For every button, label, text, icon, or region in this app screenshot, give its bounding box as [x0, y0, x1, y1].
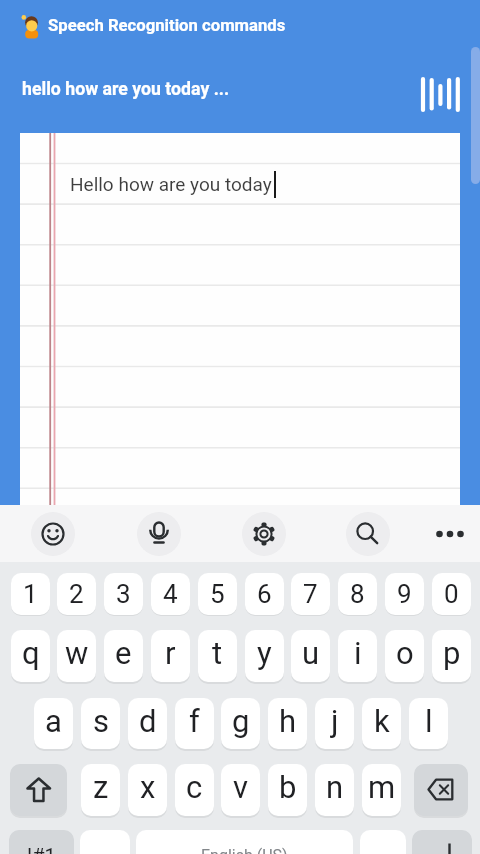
staticText: Speech Recognition commands — [48, 16, 286, 36]
staticText: x — [140, 769, 156, 805]
button[interactable]: d — [128, 698, 167, 749]
staticText: l — [425, 703, 433, 739]
button[interactable]: 2 — [57, 573, 96, 615]
staticText: 3 — [116, 579, 131, 609]
button[interactable]: g — [221, 698, 260, 749]
button[interactable] — [346, 512, 390, 556]
button[interactable]: m — [362, 764, 401, 816]
button[interactable]: j — [315, 698, 354, 749]
staticText: p — [443, 635, 461, 671]
staticText: s — [93, 703, 109, 739]
button[interactable]: r — [151, 630, 190, 682]
button[interactable]: k — [362, 698, 401, 749]
button[interactable]: 1 — [11, 573, 50, 615]
staticText: w — [65, 635, 89, 671]
staticText: y — [257, 635, 272, 671]
button[interactable] — [414, 764, 468, 816]
button[interactable]: u — [291, 630, 330, 682]
staticText: q — [22, 635, 40, 671]
button[interactable] — [428, 512, 472, 556]
button[interactable]: 4 — [151, 573, 190, 615]
button[interactable]: l — [409, 698, 448, 749]
staticText: !#1 — [27, 844, 56, 854]
staticText: i — [354, 635, 362, 671]
staticText: e — [115, 635, 132, 671]
staticText: 0 — [444, 579, 459, 609]
button[interactable]: a — [34, 698, 73, 749]
staticText: 4 — [163, 579, 178, 609]
staticText: 1 — [23, 579, 38, 609]
button[interactable]: z — [81, 764, 120, 816]
button[interactable]: b — [268, 764, 307, 816]
button[interactable]: !#1 — [9, 830, 74, 854]
button[interactable] — [137, 512, 181, 556]
staticText: hello how are you today ... — [22, 79, 230, 100]
staticText: 8 — [350, 579, 365, 609]
button[interactable]: x — [128, 764, 167, 816]
button[interactable]: 9 — [385, 573, 424, 615]
button[interactable] — [10, 764, 67, 816]
staticText: k — [374, 703, 390, 739]
button[interactable]: 6 — [245, 573, 284, 615]
button[interactable]: w — [57, 630, 96, 682]
staticText: z — [93, 769, 109, 805]
staticText: a — [45, 703, 62, 739]
button[interactable]: 8 — [338, 573, 377, 615]
button[interactable] — [360, 830, 406, 854]
staticText: Hello how are you today — [70, 173, 272, 195]
button[interactable]: 7 — [291, 573, 330, 615]
staticText: r — [165, 635, 176, 671]
button[interactable]: h — [268, 698, 307, 749]
button[interactable]: t — [198, 630, 237, 682]
button[interactable]: 5 — [198, 573, 237, 615]
button[interactable]: 0 — [432, 573, 471, 615]
staticText: 6 — [257, 579, 272, 609]
button[interactable]: o — [385, 630, 424, 682]
staticText: 5 — [210, 579, 225, 609]
staticText: b — [279, 769, 297, 805]
button[interactable] — [416, 72, 464, 116]
staticText: 2 — [69, 579, 84, 609]
staticText: u — [302, 635, 320, 671]
button[interactable]: v — [221, 764, 260, 816]
staticText: c — [186, 769, 203, 805]
button[interactable]: y — [245, 630, 284, 682]
button[interactable]: s — [81, 698, 120, 749]
button[interactable]: e — [104, 630, 143, 682]
staticText: g — [232, 703, 250, 739]
button[interactable]: 3 — [104, 573, 143, 615]
button[interactable]: f — [175, 698, 214, 749]
button[interactable]: Hello how are you today — [20, 133, 460, 505]
button[interactable]: p — [432, 630, 471, 682]
staticText: d — [139, 703, 157, 739]
staticText: m — [368, 769, 396, 805]
staticText: 9 — [397, 579, 412, 609]
button[interactable]: c — [175, 764, 214, 816]
staticText: j — [331, 703, 339, 739]
button[interactable]: i — [338, 630, 377, 682]
button[interactable]: q — [11, 630, 50, 682]
staticText: h — [279, 703, 297, 739]
staticText: English (US) — [201, 846, 288, 854]
button[interactable] — [31, 512, 75, 556]
staticText: n — [326, 769, 344, 805]
staticText: f — [189, 703, 200, 739]
staticText: t — [212, 635, 223, 671]
button[interactable] — [242, 512, 286, 556]
staticText: v — [233, 769, 249, 805]
button[interactable]: n — [315, 764, 354, 816]
button[interactable] — [412, 830, 472, 854]
staticText: 7 — [303, 579, 318, 609]
button[interactable]: English (US) — [136, 830, 353, 854]
staticText: o — [396, 635, 414, 671]
button[interactable] — [80, 830, 130, 854]
